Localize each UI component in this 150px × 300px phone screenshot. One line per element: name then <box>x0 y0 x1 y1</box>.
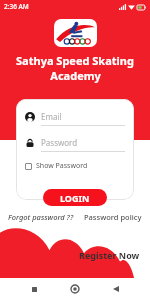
button[interactable]: Home <box>67 281 83 297</box>
button[interactable]: LOGIN <box>43 189 107 206</box>
button[interactable]: Email <box>25 111 125 126</box>
button[interactable]: Register Now <box>77 247 142 263</box>
staticText: Show Password <box>36 161 88 171</box>
button[interactable]: Recent apps <box>26 281 42 297</box>
button[interactable]: Password <box>25 137 125 152</box>
staticText: Register Now <box>79 249 140 261</box>
staticText: Email <box>41 111 62 122</box>
staticText: Forgot password ?? <box>8 212 74 222</box>
button[interactable]: Forgot password ?? <box>6 210 76 224</box>
button[interactable]: Password policy <box>82 210 144 224</box>
staticText: Academy <box>50 68 101 83</box>
staticText: Password policy <box>84 212 142 222</box>
staticText: Sathya Speed Skating <box>16 53 134 68</box>
staticText: Password <box>41 137 78 148</box>
button[interactable]: Show Password <box>25 161 88 171</box>
button[interactable]: Back <box>108 281 124 297</box>
staticText: LOGIN <box>60 192 90 204</box>
staticText: 2:36 AM <box>4 2 29 11</box>
